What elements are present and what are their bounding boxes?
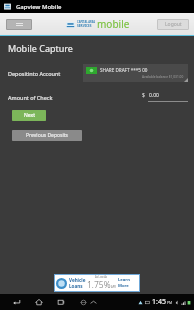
button[interactable]: Next [12,110,46,121]
button[interactable]: Home [32,295,46,309]
staticText: Depositinto Account [8,70,61,77]
staticText: $ [142,92,145,99]
staticText: Mobile Capture [8,42,73,54]
button[interactable]: Back [10,295,24,309]
button[interactable]: Menu [6,19,32,30]
staticText: More [118,283,129,289]
staticText: Available balance $1,031.00 [142,75,184,79]
staticText: SERVICES [77,24,92,28]
staticText: CAPITAL AREA [77,20,96,24]
button[interactable]: Expand [86,295,100,309]
staticText: 1:45 [152,297,166,307]
staticText: As Low As [95,275,108,279]
staticText: 1.75% [87,279,111,291]
button[interactable]: SHARE DRAFT ***5 00 [83,64,188,82]
button[interactable]: Vehicle [54,274,140,292]
staticText: 0.00 [149,92,159,99]
staticText: SHARE DRAFT ***5 00 [100,67,148,73]
staticText: Loans [69,283,83,289]
staticText: APR [111,285,116,289]
staticText: PM [167,300,173,305]
button[interactable]: Logout [157,19,189,30]
staticText: Gapview Mobile [16,3,62,11]
button[interactable]: Previous Deposits [12,130,82,141]
button[interactable]: Screenshot [76,295,90,309]
button[interactable]: $ [142,92,188,102]
staticText: mobile [97,17,130,31]
staticText: Next [24,112,35,119]
staticText: Previous Deposits [26,132,68,139]
staticText: Learn [118,277,130,283]
button[interactable]: Recent apps [54,295,68,309]
staticText: Logout [165,21,182,28]
staticText: Amount of Check [8,94,53,101]
staticText: Vehicle [69,277,86,283]
